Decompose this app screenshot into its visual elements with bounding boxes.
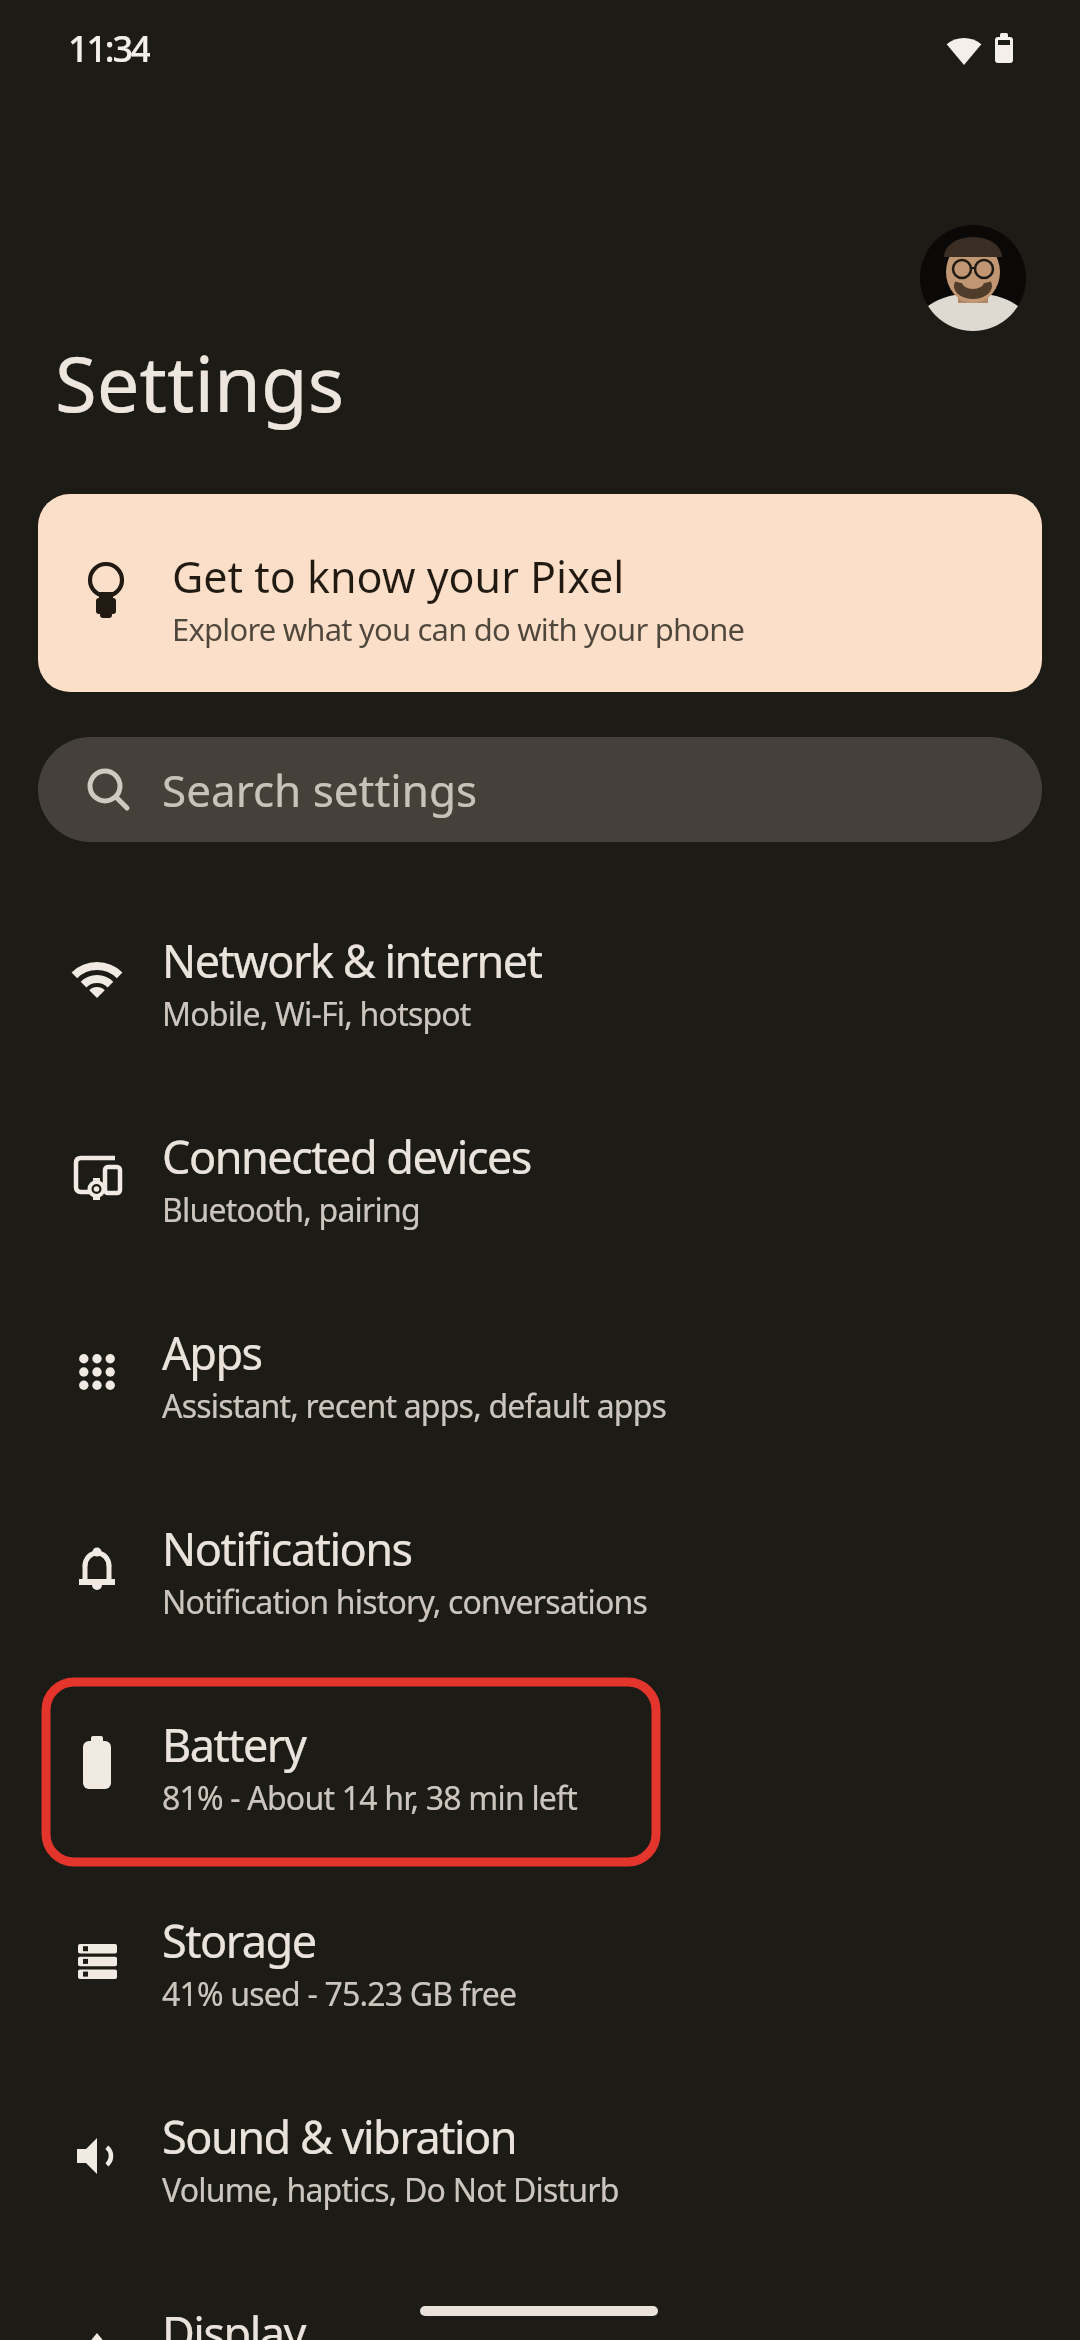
staticText: Notifications bbox=[162, 1518, 412, 1579]
staticText: Display bbox=[162, 2302, 305, 2340]
staticText: Sound & vibration bbox=[162, 2106, 517, 2167]
staticText: Volume, haptics, Do Not Disturb bbox=[162, 2168, 619, 2212]
button[interactable]: Connected devices bbox=[0, 1086, 1080, 1256]
button[interactable] bbox=[920, 225, 1026, 331]
button[interactable]: Battery bbox=[0, 1674, 1080, 1844]
button[interactable]: Get to know your Pixel bbox=[38, 494, 1042, 692]
staticText: Mobile, Wi-Fi, hotspot bbox=[162, 992, 471, 1036]
staticText: 81% - About 14 hr, 38 min left bbox=[162, 1776, 578, 1820]
staticText: Assistant, recent apps, default apps bbox=[162, 1384, 667, 1428]
button[interactable]: Storage bbox=[0, 1870, 1080, 2040]
staticText: 41% used - 75.23 GB free bbox=[162, 1972, 517, 2016]
staticText: Network & internet bbox=[162, 930, 542, 991]
staticText: Apps bbox=[162, 1322, 262, 1383]
staticText: 11:34 bbox=[68, 24, 150, 72]
button[interactable]: Search settings bbox=[38, 737, 1042, 842]
button[interactable]: Network & internet bbox=[0, 890, 1080, 1060]
staticText: Storage bbox=[162, 1910, 316, 1971]
button[interactable]: Display bbox=[0, 2262, 1080, 2340]
staticText: Battery bbox=[162, 1714, 306, 1775]
button[interactable]: Apps bbox=[0, 1282, 1080, 1452]
staticText: Connected devices bbox=[162, 1126, 531, 1187]
staticText: Notification history, conversations bbox=[162, 1580, 648, 1624]
staticText: Settings bbox=[55, 331, 345, 431]
staticText: Search settings bbox=[162, 760, 478, 820]
staticText: Bluetooth, pairing bbox=[162, 1188, 420, 1232]
button[interactable]: Sound & vibration bbox=[0, 2066, 1080, 2236]
staticText: Get to know your Pixel bbox=[172, 547, 625, 606]
button[interactable]: Notifications bbox=[0, 1478, 1080, 1648]
staticText: Explore what you can do with your phone bbox=[172, 608, 745, 650]
